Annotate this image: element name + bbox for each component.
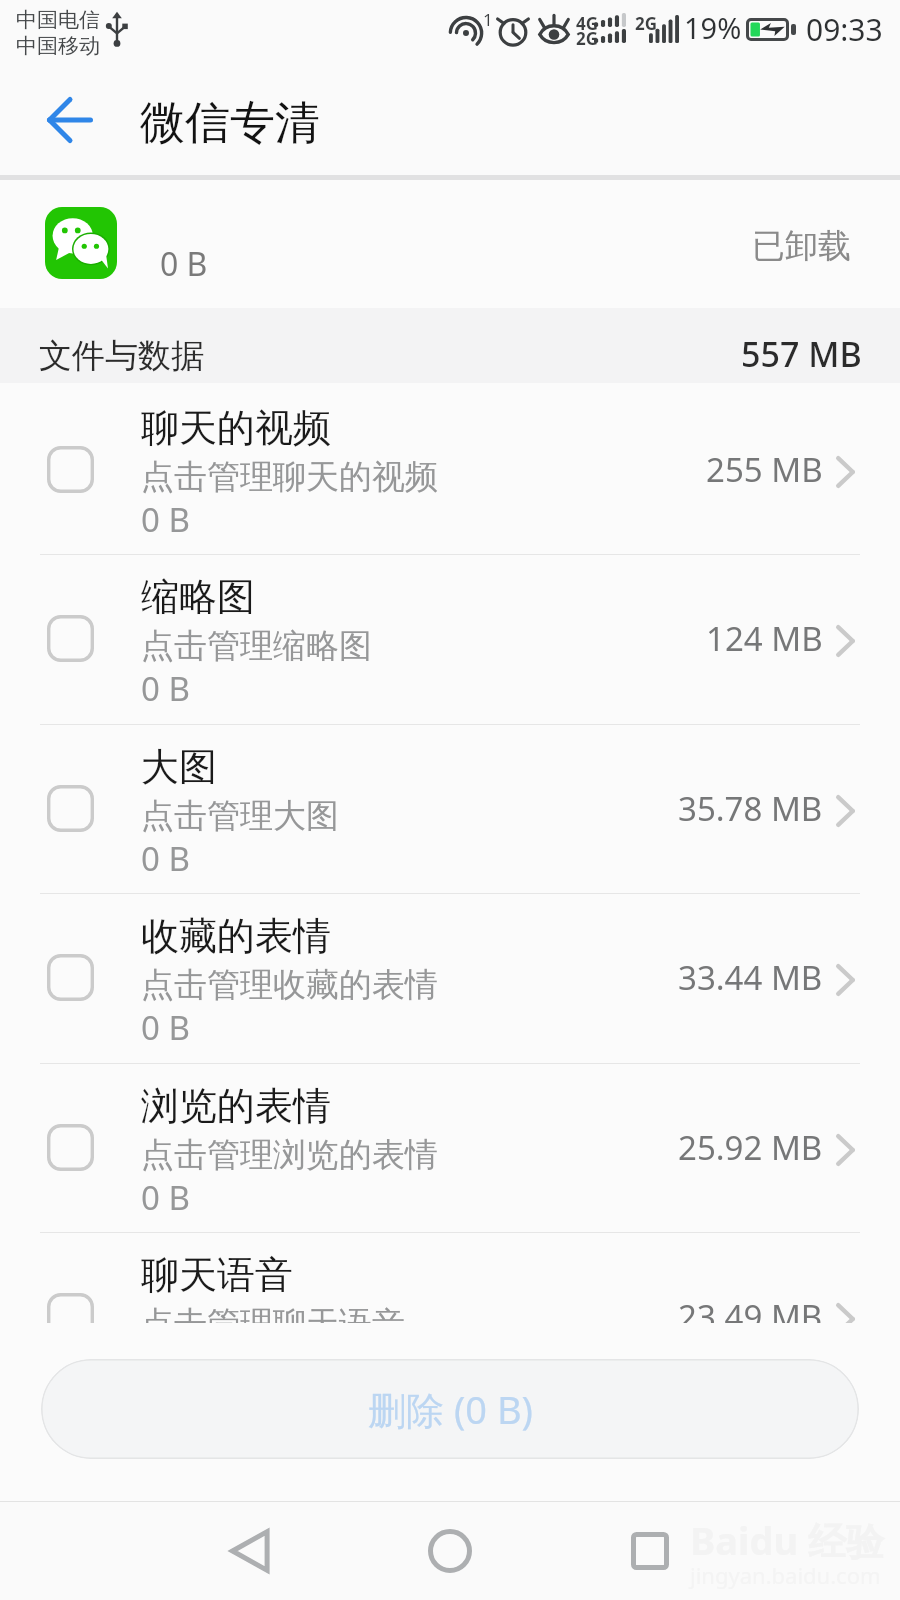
staticText: 中国移动 bbox=[16, 33, 100, 59]
staticText: 聊天语音 bbox=[141, 1251, 293, 1299]
staticText: 收藏的表情 bbox=[141, 912, 331, 960]
staticText: 557 MB bbox=[741, 331, 862, 377]
button[interactable]: Select 浏览的表情 bbox=[47, 1124, 94, 1171]
staticText: 点击管理大图 bbox=[141, 795, 339, 837]
staticText: 33.44 MB bbox=[678, 955, 823, 1000]
staticText: 0 B bbox=[141, 1005, 190, 1050]
staticText: 删除 (0 B) bbox=[368, 1383, 533, 1435]
staticText: 点击管理浏览的表情 bbox=[141, 1134, 438, 1176]
button[interactable] bbox=[0, 1232, 900, 1323]
staticText: 1 bbox=[483, 8, 493, 31]
button[interactable]: Select 聊天的视频 bbox=[47, 446, 94, 493]
button[interactable]: 删除 (0 B) bbox=[41, 1359, 859, 1459]
staticText: 0 B bbox=[141, 666, 190, 711]
button[interactable]: Home bbox=[390, 1502, 510, 1600]
button[interactable]: Select 大图 bbox=[47, 785, 94, 832]
staticText: 0 B bbox=[141, 1175, 190, 1220]
staticText: 缩略图 bbox=[141, 573, 255, 621]
staticText: 0 B bbox=[160, 242, 208, 286]
staticText: 0 B bbox=[141, 836, 190, 881]
staticText: 09:33 bbox=[806, 9, 883, 50]
staticText: 4G bbox=[576, 12, 599, 35]
staticText: 浏览的表情 bbox=[141, 1082, 331, 1130]
staticText: 点击管理收藏的表情 bbox=[141, 964, 438, 1006]
staticText: 点击管理缩略图 bbox=[141, 625, 372, 667]
staticText: 19% bbox=[684, 8, 742, 47]
staticText: 点击管理聊天的视频 bbox=[141, 456, 438, 498]
staticText: 2G bbox=[635, 12, 658, 35]
staticText: 35.78 MB bbox=[678, 786, 823, 831]
staticText: 微信专清 bbox=[140, 95, 320, 152]
button[interactable] bbox=[0, 724, 900, 895]
staticText: 25.92 MB bbox=[678, 1125, 823, 1170]
staticText: 124 MB bbox=[706, 616, 823, 661]
staticText: 2G bbox=[576, 27, 599, 50]
staticText: 23.49 MB bbox=[678, 1294, 823, 1323]
staticText: Baidu 经验 bbox=[690, 1514, 884, 1566]
button[interactable]: Select 聊天语音 bbox=[47, 1293, 94, 1323]
button[interactable]: Select 收藏的表情 bbox=[47, 954, 94, 1001]
staticText: 已卸载 bbox=[752, 225, 851, 267]
button[interactable] bbox=[0, 554, 900, 725]
button[interactable]: Select 缩略图 bbox=[47, 615, 94, 662]
button[interactable] bbox=[0, 893, 900, 1064]
staticText: 聊天的视频 bbox=[141, 404, 331, 452]
staticText: 0 B bbox=[141, 497, 190, 542]
button[interactable]: Back bbox=[26, 76, 114, 164]
staticText: 文件与数据 bbox=[39, 335, 204, 377]
button[interactable] bbox=[0, 1063, 900, 1234]
button[interactable] bbox=[0, 385, 900, 556]
staticText: 中国电信 bbox=[16, 7, 100, 33]
staticText: 大图 bbox=[141, 743, 217, 791]
staticText: 点击管理聊天语音 bbox=[141, 1303, 405, 1323]
button[interactable]: Back bbox=[190, 1502, 310, 1600]
button[interactable]: Recents bbox=[590, 1502, 710, 1600]
staticText: 255 MB bbox=[706, 447, 823, 492]
